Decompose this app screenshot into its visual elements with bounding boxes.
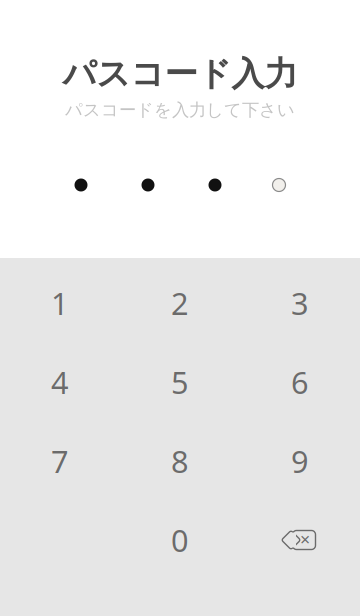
staticText: ✕	[299, 532, 310, 547]
staticText: 5	[171, 362, 189, 402]
button[interactable]: 4	[0, 364, 120, 400]
button[interactable]: 6	[240, 364, 360, 400]
staticText: 9	[291, 441, 309, 481]
button[interactable]: 7	[0, 443, 120, 479]
staticText: 2	[171, 283, 189, 323]
button[interactable]: 削除	[240, 522, 360, 558]
staticText: 1	[51, 283, 69, 323]
button[interactable]: 9	[240, 443, 360, 479]
button[interactable]: 1	[0, 285, 120, 321]
staticText: 4	[51, 362, 69, 402]
staticText: 8	[171, 441, 189, 481]
button[interactable]: 3	[240, 285, 360, 321]
staticText: パスコードを入力して下さい	[65, 99, 295, 121]
button[interactable]: 8	[120, 443, 240, 479]
staticText: 0	[171, 520, 189, 560]
button[interactable]: 0	[120, 522, 240, 558]
staticText: 3	[291, 283, 309, 323]
staticText: 6	[291, 362, 309, 402]
button[interactable]: 2	[120, 285, 240, 321]
staticText: パスコード入力	[62, 53, 297, 94]
button[interactable]: 5	[120, 364, 240, 400]
staticText: 7	[51, 441, 69, 481]
